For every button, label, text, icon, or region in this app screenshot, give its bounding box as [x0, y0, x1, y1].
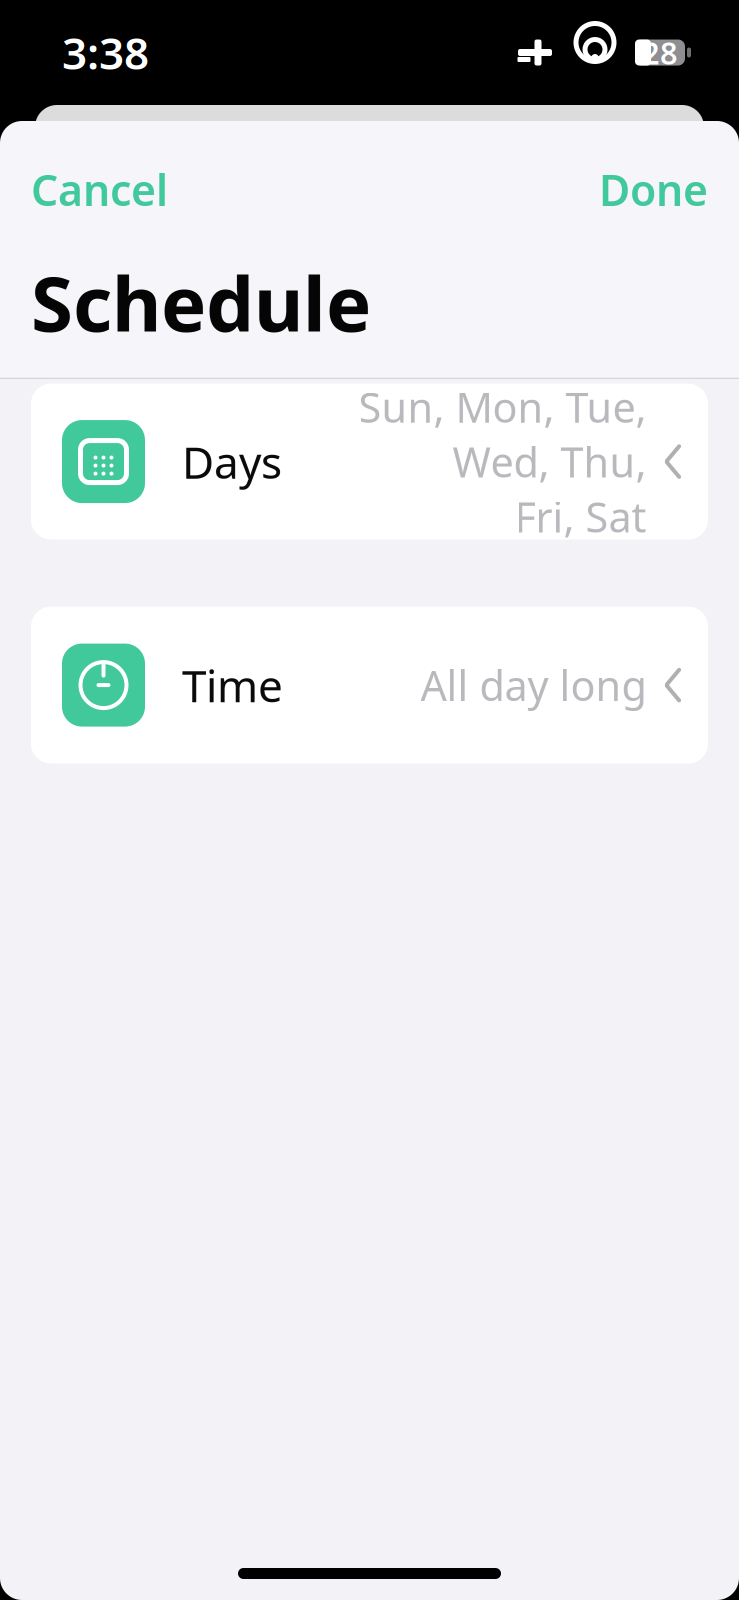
button[interactable]: Done	[599, 151, 708, 228]
staticText: Cancel	[31, 161, 168, 218]
staticText: 3:38	[62, 23, 149, 82]
staticText: Schedule	[31, 252, 371, 353]
staticText: Days	[182, 432, 282, 491]
button[interactable]: Time	[0, 607, 739, 764]
staticText: 28	[642, 32, 678, 73]
staticText: Sun, Mon, Tue, Wed, Thu, Fri, Sat	[358, 379, 646, 544]
staticText: All day long	[420, 658, 646, 712]
staticText: Done	[599, 161, 708, 218]
staticText: Time	[182, 656, 283, 714]
button[interactable]: Days	[0, 384, 739, 540]
button[interactable]: Cancel	[31, 151, 168, 228]
